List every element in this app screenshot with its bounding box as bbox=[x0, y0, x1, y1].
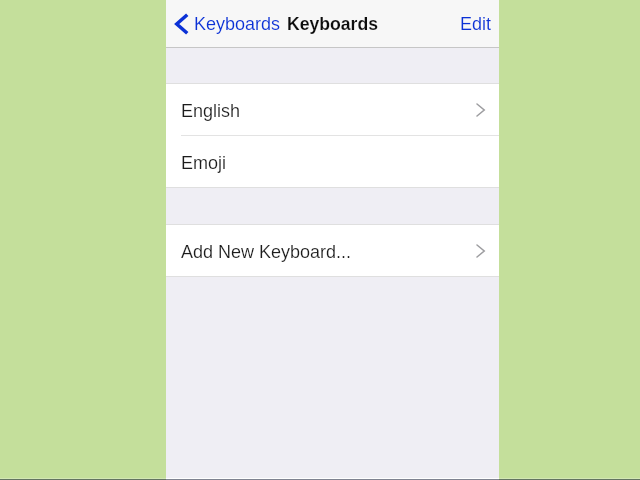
button[interactable]: English bbox=[166, 84, 499, 136]
button[interactable]: Add New Keyboard... bbox=[166, 225, 499, 276]
staticText: English bbox=[181, 101, 241, 121]
other: Back bbox=[175, 13, 189, 35]
staticText: Edit bbox=[460, 14, 492, 34]
staticText: Keyboards bbox=[287, 14, 378, 34]
button[interactable]: Edit bbox=[450, 0, 499, 48]
staticText: Emoji bbox=[181, 153, 227, 173]
button[interactable]: Back bbox=[166, 0, 286, 48]
staticText: Add New Keyboard... bbox=[181, 242, 352, 262]
button[interactable]: Emoji bbox=[166, 136, 499, 187]
staticText: Keyboards bbox=[194, 14, 281, 34]
